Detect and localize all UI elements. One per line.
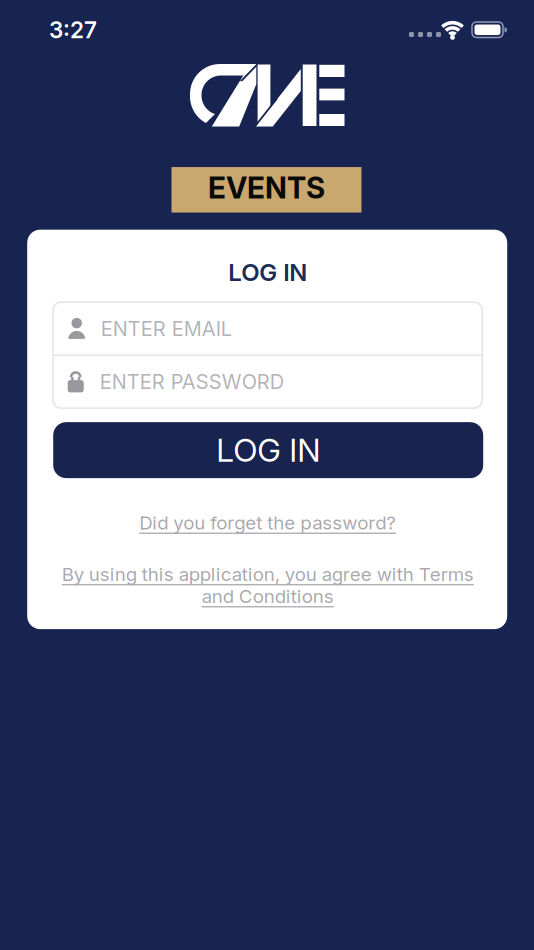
staticText: ENTER PASSWORD	[100, 370, 284, 393]
staticText: LOG IN	[228, 258, 307, 286]
button[interactable]: Enter password	[53, 355, 482, 408]
button[interactable]: By using this application, you agree wit…	[62, 563, 474, 607]
staticText: LOG IN	[216, 431, 320, 469]
staticText: 3:27	[49, 17, 97, 43]
staticText: ENTER EMAIL	[101, 317, 232, 340]
staticText: and Conditions	[202, 585, 334, 607]
button[interactable]: LOG IN	[53, 422, 483, 478]
staticText: EVENTS	[208, 170, 325, 205]
button[interactable]: Enter email	[53, 302, 482, 355]
staticText: Did you forget the password?	[139, 512, 396, 534]
staticText: By using this application, you agree wit…	[62, 563, 474, 585]
button[interactable]: Did you forget the password?	[139, 512, 396, 534]
